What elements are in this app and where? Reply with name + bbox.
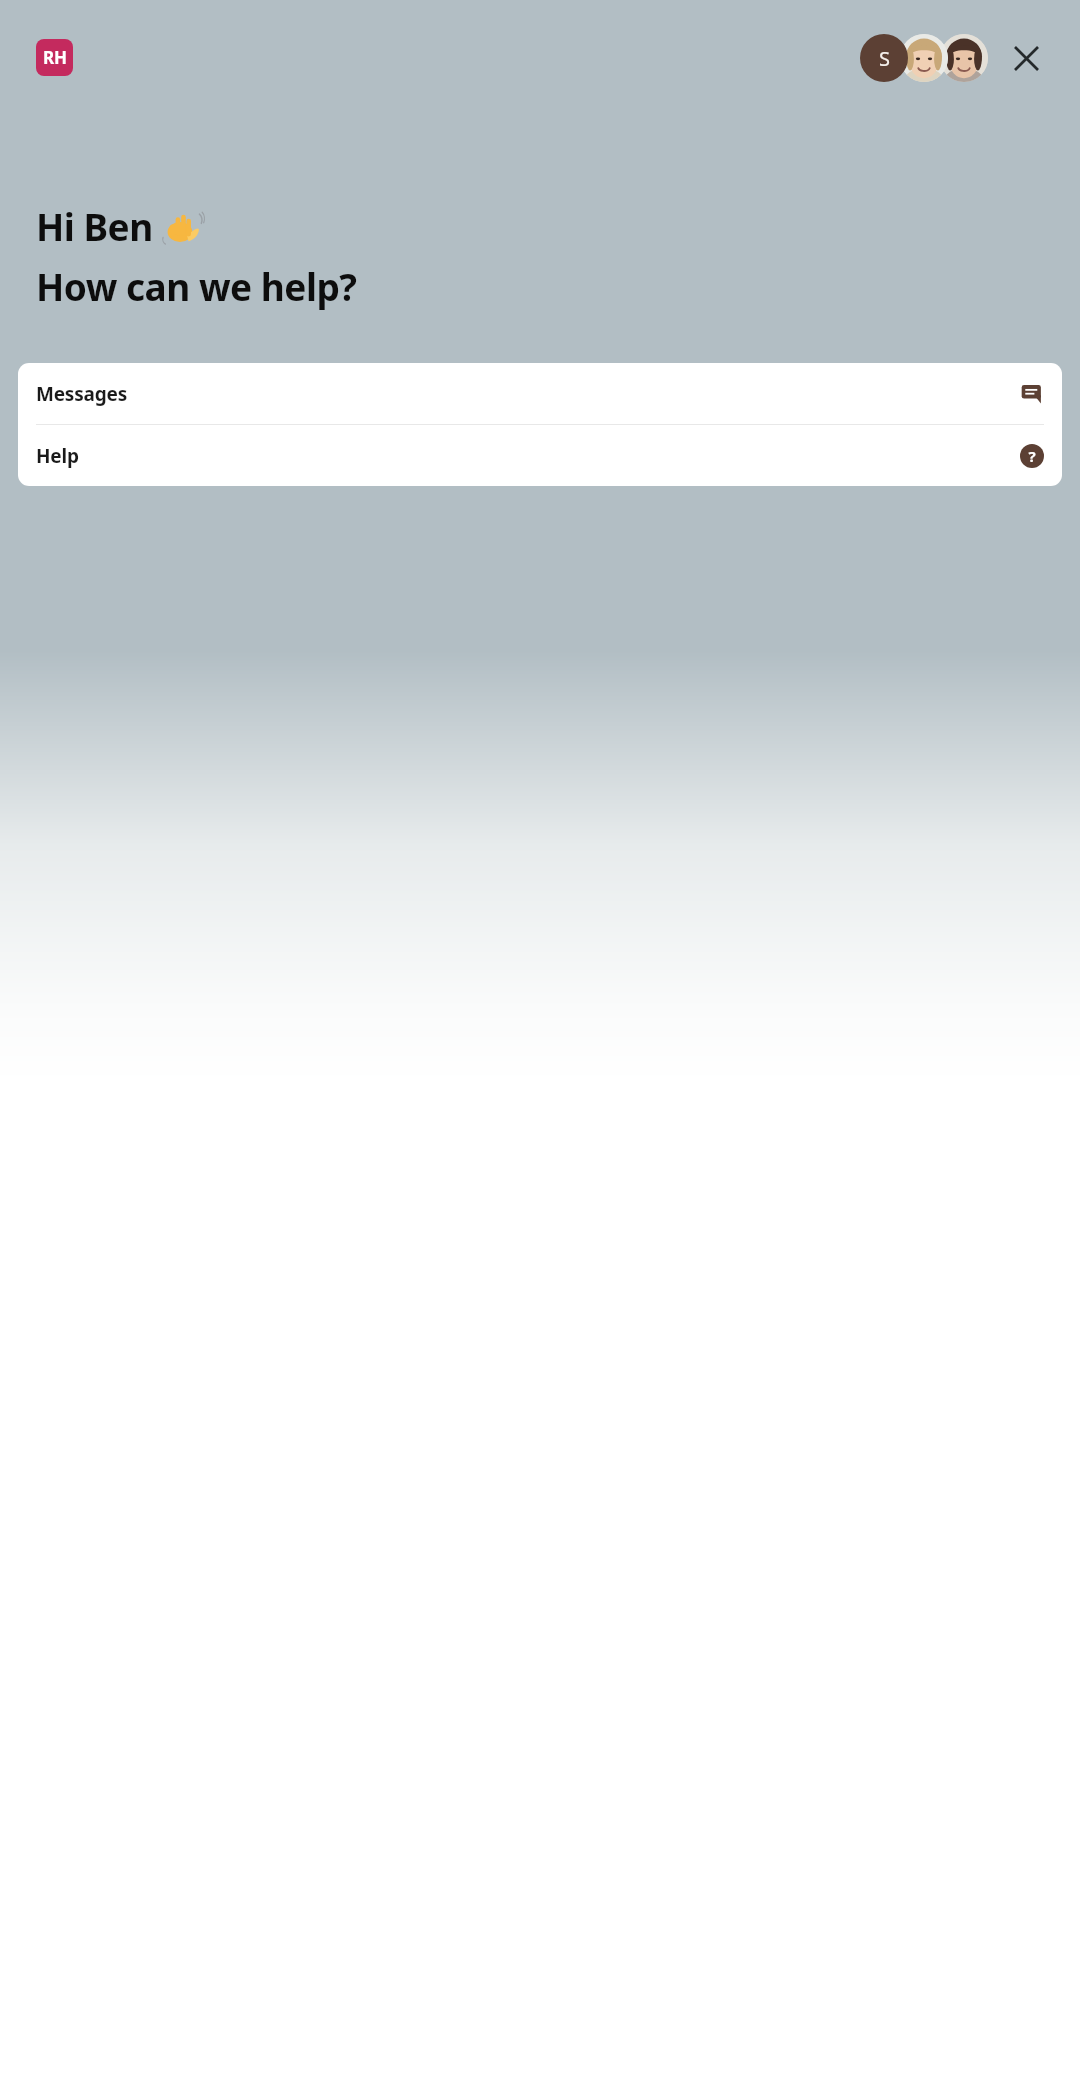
other: Messages — [1020, 382, 1044, 406]
staticText: Messages — [36, 381, 128, 407]
staticText: ? — [1028, 446, 1036, 466]
staticText: Help — [36, 443, 79, 469]
button[interactable]: Help — [18, 425, 1062, 486]
button[interactable]: Close — [1002, 34, 1050, 82]
other: Help — [1020, 444, 1044, 468]
button[interactable]: Team members — [860, 34, 988, 82]
staticText: How can we help? — [36, 261, 357, 311]
button[interactable]: Messages — [18, 363, 1062, 424]
button[interactable]: RH — [36, 39, 73, 76]
staticText: RH — [43, 46, 67, 69]
staticText: Hi Ben — [36, 201, 162, 251]
staticText: S — [879, 45, 890, 72]
